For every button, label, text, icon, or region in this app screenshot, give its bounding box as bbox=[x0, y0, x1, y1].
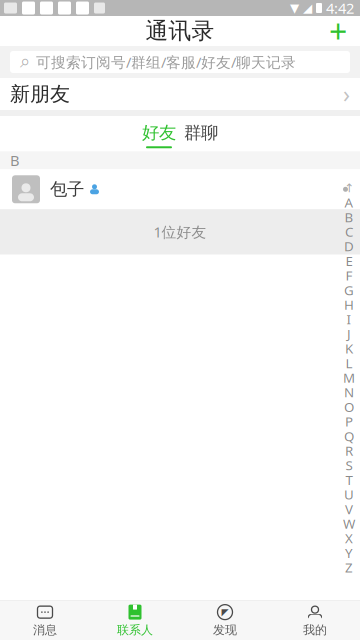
staticText: F bbox=[345, 266, 352, 284]
staticText: R bbox=[345, 442, 353, 459]
staticText: B bbox=[344, 208, 353, 226]
button[interactable]: ⌕ bbox=[0, 46, 360, 78]
staticText: ◤ bbox=[221, 607, 228, 617]
staticText: ⌕ bbox=[20, 53, 30, 71]
staticText: 消息 bbox=[33, 623, 57, 637]
button[interactable]: 群聊 bbox=[180, 122, 222, 148]
staticText: 包子 bbox=[50, 179, 84, 200]
button[interactable]: 好友 bbox=[138, 122, 180, 148]
staticText: + bbox=[329, 10, 347, 52]
button[interactable]: 联系人 bbox=[90, 601, 180, 640]
staticText: 通讯录 bbox=[145, 17, 214, 45]
staticText: N bbox=[344, 383, 354, 401]
staticText: › bbox=[343, 79, 350, 109]
button[interactable]: 我的 bbox=[270, 601, 360, 640]
staticText: L bbox=[345, 354, 352, 372]
staticText: I bbox=[346, 310, 351, 328]
staticText: 发现 bbox=[213, 623, 237, 637]
staticText: X bbox=[345, 529, 353, 547]
staticText: 1位好友 bbox=[153, 222, 206, 242]
staticText: 好友 bbox=[142, 122, 176, 143]
staticText: ◢ bbox=[303, 1, 312, 15]
button[interactable]: 包子 bbox=[0, 169, 360, 209]
staticText: V bbox=[345, 500, 353, 518]
button[interactable]: 新朋友 bbox=[0, 78, 360, 110]
staticText: E bbox=[345, 252, 352, 270]
staticText: 联系人 bbox=[117, 623, 153, 637]
staticText: H bbox=[344, 296, 354, 313]
staticText: 我的 bbox=[303, 623, 327, 637]
button[interactable]: Add bbox=[316, 16, 360, 46]
staticText: M bbox=[343, 369, 355, 386]
staticText: S bbox=[345, 456, 352, 474]
staticText: K bbox=[345, 339, 353, 357]
staticText: Y bbox=[345, 544, 353, 562]
staticText: A bbox=[344, 193, 353, 211]
staticText: 可搜索订阅号/群组/客服/好友/聊天记录 bbox=[36, 52, 296, 72]
staticText: G bbox=[344, 281, 354, 299]
staticText: Q bbox=[344, 427, 354, 445]
button[interactable]: 消息 bbox=[0, 601, 90, 640]
staticText: T bbox=[345, 471, 352, 489]
staticText: 群聊 bbox=[184, 122, 218, 143]
staticText: U bbox=[344, 485, 354, 503]
staticText: C bbox=[345, 223, 353, 240]
staticText: D bbox=[344, 237, 354, 255]
staticText: W bbox=[343, 515, 355, 532]
staticText: ↑ bbox=[344, 181, 354, 195]
button[interactable]: ◤ bbox=[180, 601, 270, 640]
staticText: P bbox=[345, 412, 353, 430]
staticText: 新朋友 bbox=[10, 82, 70, 106]
staticText: O bbox=[344, 398, 354, 416]
staticText: 4:42 bbox=[326, 0, 354, 18]
staticText: Z bbox=[345, 558, 353, 576]
staticText: J bbox=[347, 325, 351, 343]
staticText: B bbox=[10, 151, 20, 170]
staticText: ▼ bbox=[290, 1, 299, 15]
